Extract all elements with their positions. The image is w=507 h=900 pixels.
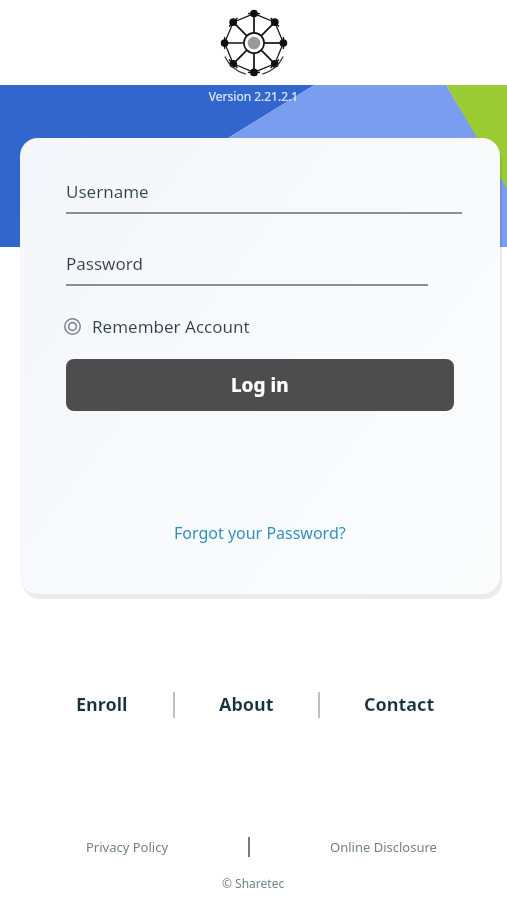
button[interactable]: Username [20, 180, 500, 214]
staticText: Remember Account [92, 315, 250, 338]
button[interactable]: Online Disclosure [322, 833, 445, 861]
button[interactable]: Remember Account [20, 311, 266, 342]
button[interactable]: Contact [350, 686, 449, 723]
staticText: Username [66, 180, 149, 203]
staticText: Password [66, 252, 143, 275]
staticText: © Sharetec [222, 875, 285, 891]
button[interactable]: Enroll [62, 686, 142, 723]
staticText: Privacy Policy [86, 838, 169, 856]
other: Logo [219, 8, 289, 78]
button[interactable]: About [205, 686, 288, 723]
staticText: Log in [231, 372, 289, 398]
staticText: Enroll [76, 692, 128, 717]
button[interactable]: Forgot your Password? [20, 516, 500, 550]
button[interactable]: Log in [66, 359, 454, 411]
button[interactable]: Password [20, 252, 500, 286]
staticText: Contact [364, 692, 435, 717]
staticText: About [219, 692, 274, 717]
staticText: Version 2.21.2.1 [0, 88, 507, 104]
staticText: Online Disclosure [330, 838, 437, 856]
button[interactable]: Privacy Policy [78, 833, 177, 861]
staticText: Forgot your Password? [174, 522, 346, 544]
